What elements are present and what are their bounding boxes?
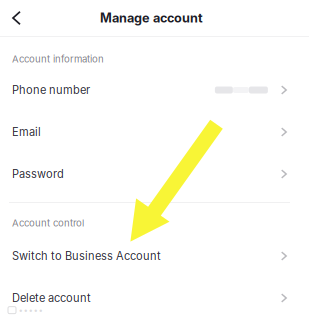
button[interactable]: Delete account bbox=[0, 277, 309, 319]
button[interactable]: Phone number bbox=[0, 69, 309, 111]
staticText: Phone number bbox=[12, 83, 90, 97]
button[interactable]: Back bbox=[0, 2, 21, 34]
button[interactable]: Password bbox=[0, 153, 309, 195]
staticText: Password bbox=[12, 167, 64, 181]
staticText: Manage account bbox=[100, 10, 203, 26]
staticText: Account information bbox=[12, 53, 104, 65]
staticText: Email bbox=[12, 125, 41, 139]
button[interactable]: Email bbox=[0, 111, 309, 153]
button[interactable]: Switch to Business Account bbox=[0, 235, 309, 277]
staticText: Switch to Business Account bbox=[12, 249, 161, 263]
staticText: Account control bbox=[12, 217, 84, 229]
staticText: ••••• bbox=[18, 305, 43, 315]
staticText: Delete account bbox=[12, 291, 91, 305]
